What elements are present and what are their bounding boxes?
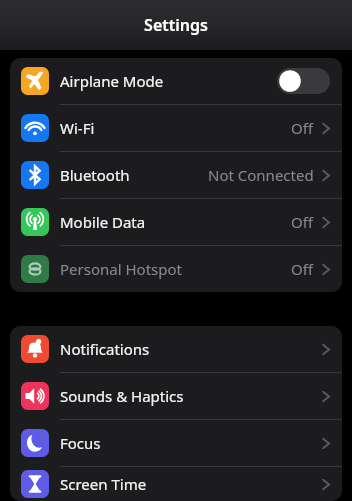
staticText: Focus [60,433,322,453]
staticText: Settings [144,14,208,36]
button[interactable]: Airplane Mode toggle, off [277,68,330,94]
staticText: Wi-Fi [60,118,291,138]
staticText: Sounds & Haptics [60,386,322,406]
button[interactable]: Mobile Data [10,199,342,245]
staticText: Off [291,259,314,279]
staticText: Airplane Mode [60,71,277,91]
button[interactable]: Personal Hotspot [10,246,342,292]
staticText: Mobile Data [60,212,291,232]
button[interactable]: Sounds & Haptics [10,373,342,419]
button[interactable]: Bluetooth [10,152,342,198]
button[interactable]: Focus [10,420,342,466]
staticText: Screen Time [60,474,322,494]
button[interactable]: Notifications [10,326,342,372]
button[interactable]: Screen Time [10,467,342,501]
staticText: Off [291,118,314,138]
staticText: Notifications [60,339,322,359]
button[interactable]: Airplane Mode [10,58,342,104]
button[interactable]: Wi-Fi [10,105,342,151]
staticText: Off [291,212,314,232]
staticText: Bluetooth [60,165,208,185]
staticText: Not Connected [208,165,314,185]
staticText: Personal Hotspot [60,259,291,279]
